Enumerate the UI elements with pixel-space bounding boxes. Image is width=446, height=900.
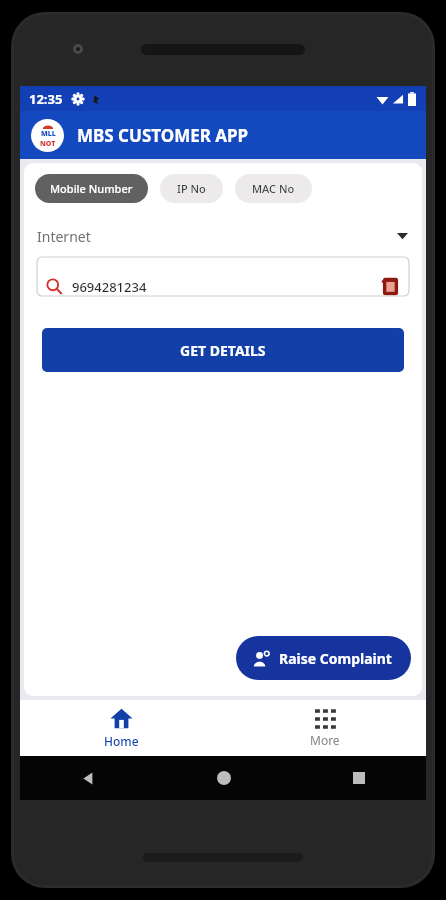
button[interactable]: GET DETAILS bbox=[42, 328, 404, 372]
button[interactable]: Pick from contacts bbox=[381, 277, 400, 296]
button[interactable]: 9694281234 bbox=[37, 267, 409, 306]
staticText: 12:35 bbox=[29, 90, 63, 108]
staticText: NOT bbox=[40, 139, 56, 149]
button[interactable]: Recents bbox=[291, 756, 426, 800]
button[interactable]: MAC No bbox=[235, 174, 312, 203]
button[interactable]: IP No bbox=[160, 174, 223, 203]
staticText: Mobile Number bbox=[50, 181, 133, 196]
staticText: MLL bbox=[41, 129, 56, 139]
button[interactable]: More bbox=[223, 700, 426, 756]
button[interactable]: Raise Complaint bbox=[236, 636, 411, 680]
staticText: More bbox=[310, 732, 340, 748]
button[interactable]: Home bbox=[20, 700, 223, 756]
button[interactable]: Home bbox=[156, 756, 291, 800]
staticText: GET DETAILS bbox=[180, 341, 266, 360]
staticText: Raise Complaint bbox=[279, 649, 392, 668]
staticText: MBS CUSTOMER APP bbox=[77, 124, 249, 147]
button[interactable]: Internet bbox=[24, 219, 422, 253]
staticText: Home bbox=[104, 733, 139, 749]
button[interactable]: Back bbox=[20, 756, 156, 800]
staticText: 9694281234 bbox=[72, 278, 147, 296]
staticText: IP No bbox=[177, 181, 206, 196]
button[interactable]: Mobile Number bbox=[35, 174, 148, 203]
staticText: Internet bbox=[37, 227, 91, 246]
staticText: MAC No bbox=[252, 181, 295, 196]
